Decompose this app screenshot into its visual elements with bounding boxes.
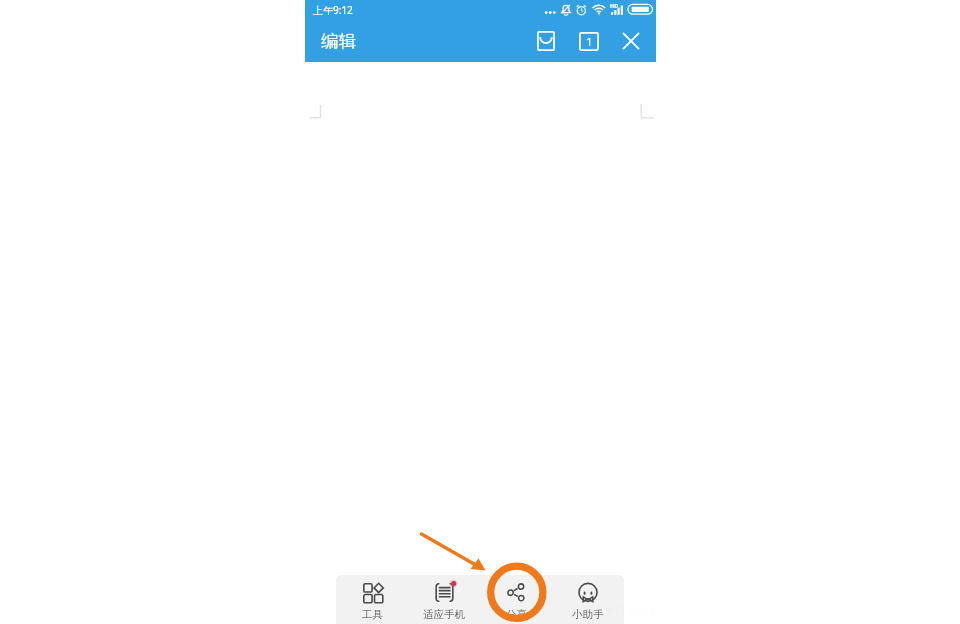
button[interactable]: Close xyxy=(614,24,648,58)
button[interactable]: 工具 xyxy=(336,575,408,621)
button[interactable]: 小助手 xyxy=(552,575,624,621)
staticText: 1 xyxy=(586,34,593,50)
staticText: 适应手机 xyxy=(423,608,465,621)
staticText: 工具 xyxy=(362,608,383,621)
button[interactable]: 分享 xyxy=(480,575,552,621)
staticText: 编辑 xyxy=(321,30,356,52)
staticText: HD xyxy=(610,2,619,9)
button[interactable]: Save xyxy=(529,24,563,58)
button[interactable]: Pages xyxy=(572,24,606,58)
staticText: 上午9:12 xyxy=(313,3,353,17)
staticText: 小助手 xyxy=(572,608,604,621)
button[interactable]: 适应手机 xyxy=(408,575,480,621)
staticText: 分享 xyxy=(506,608,527,621)
staticText: 手机爱好者 xyxy=(604,603,659,617)
